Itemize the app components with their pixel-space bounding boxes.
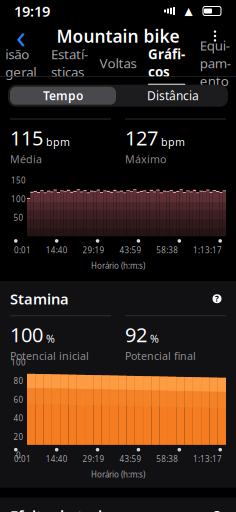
staticText: Voltas	[99, 54, 136, 72]
staticText: ▲	[184, 5, 192, 17]
staticText: 40	[13, 413, 23, 423]
staticText: 0	[16, 450, 21, 461]
button[interactable]: Tempo	[8, 85, 118, 107]
staticText: 58:38	[156, 453, 178, 464]
button[interactable]: Estatísticas	[51, 40, 88, 86]
staticText: 14:40	[46, 453, 68, 464]
staticText: Distância	[147, 88, 199, 104]
button[interactable]: Voltas	[99, 49, 137, 77]
staticText: 1:13:17	[193, 245, 222, 255]
staticText: 115	[10, 124, 43, 151]
button[interactable]: Distância	[118, 85, 228, 107]
staticText: 19:19	[14, 1, 50, 21]
staticText: Tempo	[43, 88, 83, 104]
staticText: Horário (h:m:s)	[91, 469, 145, 480]
staticText: Efeito de treino	[10, 506, 120, 512]
staticText: 127	[125, 124, 158, 151]
staticText: 100	[11, 357, 26, 368]
staticText: Estatísticas	[51, 45, 88, 81]
staticText: 50	[13, 212, 23, 223]
staticText: %	[150, 331, 159, 346]
staticText: 58:38	[156, 245, 178, 255]
button[interactable]: Equipamento	[196, 31, 234, 94]
staticText: 92	[125, 321, 147, 348]
staticText: Equipamento	[200, 36, 231, 89]
staticText: Máximo	[125, 152, 166, 166]
button[interactable]: Back	[6, 22, 36, 50]
staticText: bpm	[161, 135, 185, 149]
staticText: Média	[10, 152, 42, 166]
staticText: Gráficos	[148, 45, 185, 81]
staticText: Potencial inicial	[10, 349, 89, 363]
staticText: 29:19	[83, 453, 105, 464]
staticText: %	[46, 331, 55, 346]
staticText: 0:01	[14, 453, 31, 464]
button[interactable]: Information about Efeito de treino	[208, 506, 226, 512]
button[interactable]: isão geral	[2, 40, 40, 86]
staticText: ?	[215, 510, 219, 512]
staticText: 43:59	[119, 245, 141, 255]
staticText: Mountain bike	[56, 24, 179, 47]
staticText: bpm	[46, 135, 70, 149]
staticText: Horário (h:m:s)	[91, 260, 145, 271]
staticText: 80	[13, 376, 23, 386]
staticText: 43:59	[119, 453, 141, 464]
button[interactable]: Information about Stamina	[208, 290, 226, 308]
staticText: 14:40	[46, 245, 68, 255]
staticText: 29:19	[83, 245, 105, 255]
staticText: 100	[10, 321, 43, 348]
staticText: 0:01	[14, 245, 31, 255]
button[interactable]: Gráficos	[148, 40, 185, 86]
staticText: 1:13:17	[193, 453, 222, 464]
staticText: Stamina	[10, 289, 69, 308]
staticText: 100	[11, 194, 26, 204]
staticText: Potencial final	[125, 349, 196, 363]
staticText: 60	[13, 394, 23, 405]
staticText: isão geral	[5, 45, 36, 81]
button[interactable]: More options	[200, 22, 230, 50]
staticText: 20	[13, 431, 23, 442]
staticText: ?	[215, 293, 219, 304]
staticText: 150	[11, 175, 26, 186]
staticText: ‹	[16, 15, 26, 57]
